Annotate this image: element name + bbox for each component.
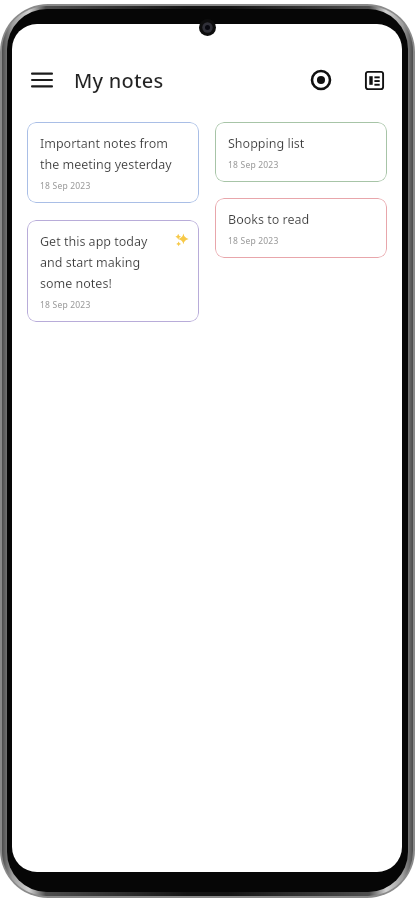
staticText: Get this app today and start making some… — [40, 233, 171, 292]
button[interactable]: Shopping list — [215, 122, 387, 182]
staticText: Shopping list — [228, 135, 305, 152]
staticText: 18 Sep 2023 — [40, 180, 91, 192]
staticText: Important notes from the meeting yesterd… — [40, 135, 189, 173]
staticText: 18 Sep 2023 — [228, 159, 279, 171]
staticText: My notes — [74, 67, 164, 94]
staticText: Books to read — [228, 211, 310, 228]
button[interactable]: Toggle dark theme — [301, 60, 341, 100]
staticText: 18 Sep 2023 — [228, 235, 279, 247]
staticText: 18 Sep 2023 — [40, 299, 91, 311]
button[interactable]: Switch layout view — [354, 60, 394, 100]
button[interactable]: Get this app today and start making some… — [27, 220, 199, 322]
button[interactable]: Books to read — [215, 198, 387, 258]
button[interactable]: Open navigation menu — [22, 60, 62, 100]
button[interactable]: Important notes from the meeting yesterd… — [27, 122, 199, 203]
